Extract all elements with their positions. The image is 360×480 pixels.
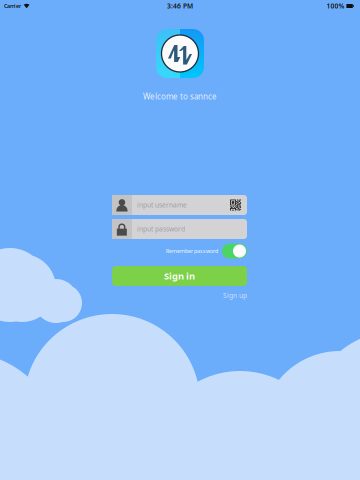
- staticText: Welcome to sannce: [143, 91, 217, 102]
- button[interactable]: input username: [112, 195, 247, 215]
- staticText: 100%: [326, 2, 344, 10]
- staticText: input password: [137, 225, 185, 233]
- staticText: 3:46 PM: [167, 2, 193, 10]
- button[interactable]: Remember password: [222, 243, 247, 258]
- staticText: Remember password: [166, 247, 218, 255]
- staticText: Sign up: [223, 291, 247, 300]
- button[interactable]: Sign in: [112, 266, 247, 286]
- button[interactable]: input password: [112, 219, 247, 239]
- staticText: Carrier: [4, 2, 21, 10]
- staticText: input username: [137, 201, 187, 209]
- staticText: Sign in: [164, 270, 195, 282]
- button[interactable]: Sign up: [223, 291, 247, 300]
